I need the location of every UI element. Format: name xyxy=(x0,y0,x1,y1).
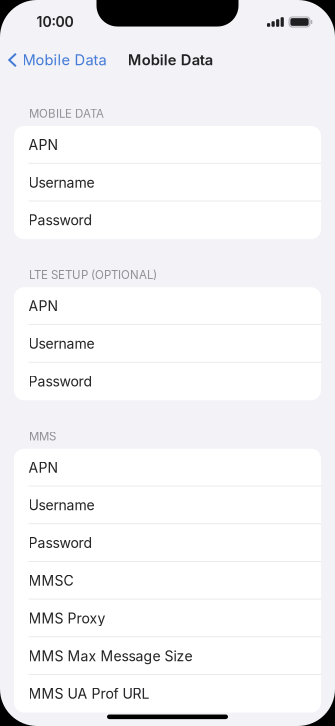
staticText: Mobile Data xyxy=(128,51,213,69)
button[interactable]: MMS Max Message Size xyxy=(14,637,321,675)
staticText: Username xyxy=(28,335,94,352)
staticText: MMS Proxy xyxy=(28,610,105,627)
staticText: Mobile Data xyxy=(23,51,107,69)
staticText: MMS xyxy=(29,429,56,443)
button[interactable]: APN xyxy=(14,287,321,325)
staticText: Password xyxy=(28,212,92,229)
staticText: MOBILE DATA xyxy=(29,107,104,121)
button[interactable]: Back to Mobile Data xyxy=(0,44,120,76)
button[interactable]: Password xyxy=(14,201,321,239)
staticText: 10:00 xyxy=(36,13,73,30)
button[interactable]: Username xyxy=(14,486,321,524)
staticText: MMS UA Prof URL xyxy=(28,685,149,702)
staticText: Password xyxy=(28,373,92,390)
button[interactable]: APN xyxy=(14,449,321,486)
staticText: MMSC xyxy=(28,572,73,589)
button[interactable]: Password xyxy=(14,363,321,400)
staticText: Username xyxy=(28,174,94,191)
staticText: APN xyxy=(28,298,58,314)
button[interactable]: APN xyxy=(14,126,321,164)
staticText: APN xyxy=(28,459,58,476)
staticText: Username xyxy=(28,497,94,514)
staticText: MMS Max Message Size xyxy=(28,648,192,664)
button[interactable]: Username xyxy=(14,164,321,201)
button[interactable]: MMS Proxy xyxy=(14,599,321,637)
button[interactable]: Username xyxy=(14,325,321,363)
staticText: LTE SETUP (OPTIONAL) xyxy=(29,268,157,282)
button[interactable]: MMSC xyxy=(14,562,321,599)
button[interactable]: MMS UA Prof URL xyxy=(14,675,321,713)
button[interactable]: Password xyxy=(14,524,321,562)
staticText: APN xyxy=(28,136,58,153)
staticText: Password xyxy=(28,534,92,551)
